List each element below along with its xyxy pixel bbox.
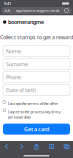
staticText: AA: [4, 8, 10, 13]
staticText: Surname: [6, 61, 28, 68]
button[interactable]: Bookmarks: [48, 143, 55, 150]
staticText: Date of birth: [6, 87, 36, 94]
button[interactable]: Tabs: [63, 143, 70, 150]
staticText: boomerangme: [8, 18, 44, 26]
button[interactable]: Back: [3, 143, 10, 150]
staticText: Phone: [6, 74, 21, 81]
button[interactable]: Page settings: [4, 8, 10, 13]
button[interactable]: Forward: [18, 143, 25, 150]
staticText: Collect stamps to get a reward: [0, 34, 73, 41]
button[interactable]: Get a card: [3, 124, 70, 135]
staticText: Name: [6, 48, 21, 55]
staticText: app.boomerangme.cards: [15, 8, 59, 13]
staticText: I accept the terms of the offer: [8, 101, 59, 106]
staticText: I agree to the processing of my personal…: [8, 109, 61, 120]
staticText: 9:41: [4, 1, 11, 6]
staticText: Get a card: [24, 126, 49, 133]
button[interactable]: Reload: [64, 8, 68, 12]
button[interactable]: Share: [33, 143, 40, 150]
